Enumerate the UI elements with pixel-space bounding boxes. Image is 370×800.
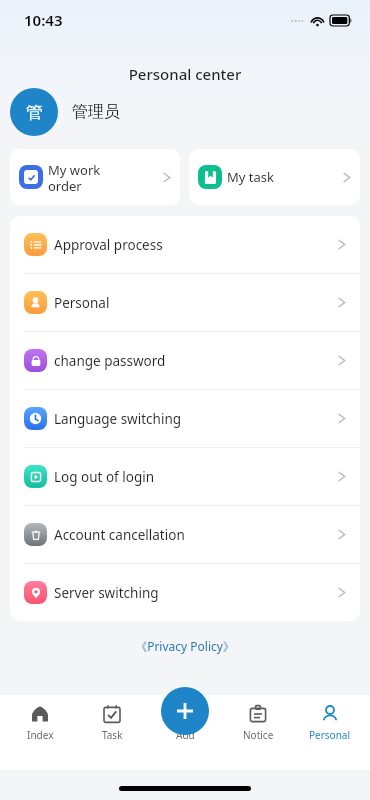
staticText: My work order bbox=[48, 161, 162, 194]
staticText: Server switching bbox=[54, 584, 337, 602]
button[interactable]: Approval process bbox=[10, 216, 360, 273]
staticText: My task bbox=[227, 168, 342, 186]
staticText: Index bbox=[27, 728, 54, 742]
button[interactable]: Add bbox=[161, 687, 209, 735]
button[interactable]: My task bbox=[189, 149, 360, 205]
button[interactable]: Personal bbox=[10, 274, 360, 331]
staticText: change password bbox=[54, 352, 337, 370]
staticText: 管 bbox=[26, 102, 43, 123]
staticText: Notice bbox=[243, 728, 274, 742]
staticText: Account cancellation bbox=[54, 526, 337, 544]
button[interactable]: Account cancellation bbox=[10, 506, 360, 563]
button[interactable]: Notice bbox=[225, 700, 291, 746]
staticText: Personal bbox=[309, 728, 351, 742]
staticText: Task bbox=[102, 728, 123, 742]
staticText: Add bbox=[176, 728, 195, 742]
button[interactable]: My work order bbox=[10, 149, 180, 205]
button[interactable]: change password bbox=[10, 332, 360, 389]
staticText: Personal center bbox=[0, 64, 370, 84]
staticText: Log out of login bbox=[54, 468, 337, 486]
staticText: 10:43 bbox=[24, 10, 63, 30]
button[interactable]: Server switching bbox=[10, 564, 360, 621]
button[interactable]: 《Privacy Policy》 bbox=[0, 638, 370, 654]
button[interactable]: Log out of login bbox=[10, 448, 360, 505]
staticText: 管理员 bbox=[72, 102, 120, 122]
button[interactable]: Add bbox=[152, 700, 218, 746]
button[interactable]: Personal bbox=[297, 700, 363, 746]
staticText: Personal bbox=[54, 294, 337, 312]
button[interactable]: Language switching bbox=[10, 390, 360, 447]
button[interactable]: Task bbox=[79, 700, 145, 746]
staticText: Approval process bbox=[54, 236, 337, 254]
button[interactable]: Index bbox=[7, 700, 73, 746]
staticText: Language switching bbox=[54, 410, 337, 428]
button[interactable]: 管 bbox=[10, 88, 370, 136]
